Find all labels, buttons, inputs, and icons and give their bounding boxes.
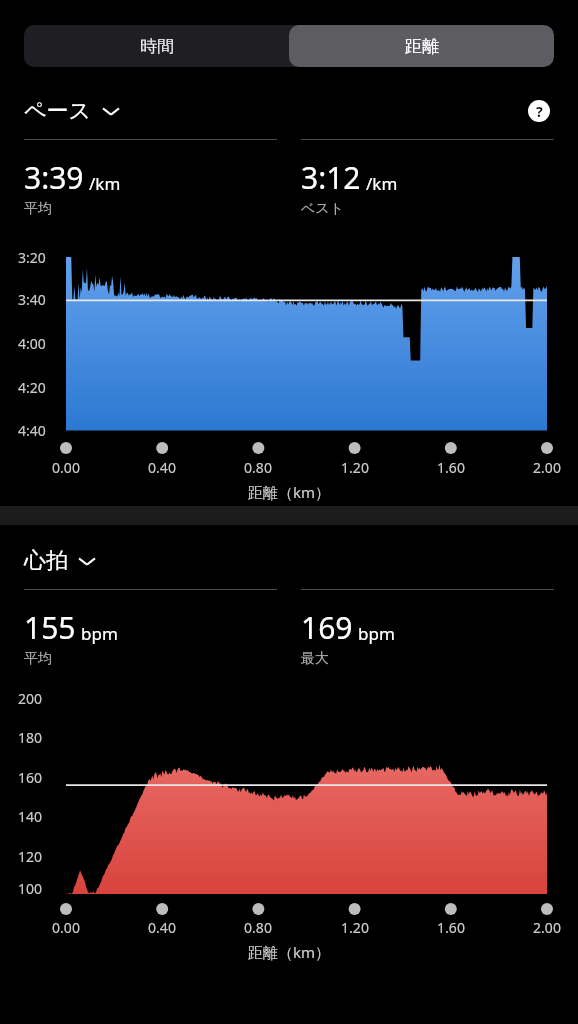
- staticText: 心拍: [24, 547, 68, 575]
- staticText: 155: [24, 607, 76, 648]
- staticText: 1.20: [331, 458, 379, 477]
- staticText: 180: [18, 728, 43, 747]
- staticText: 3:12: [301, 157, 361, 198]
- staticText: 2.00: [523, 918, 571, 937]
- staticText: 169: [301, 607, 353, 648]
- button[interactable]: 心拍: [24, 547, 102, 575]
- staticText: 3:39: [24, 157, 84, 198]
- staticText: 3:40: [18, 290, 46, 309]
- button[interactable]: ヘルプ: [524, 96, 554, 126]
- button[interactable]: 時間: [24, 25, 289, 67]
- staticText: bpm: [358, 622, 395, 645]
- staticText: 平均: [24, 650, 52, 668]
- staticText: 160: [18, 768, 43, 787]
- staticText: 100: [18, 879, 43, 898]
- staticText: 距離（km）: [0, 942, 578, 962]
- staticText: 時間: [140, 36, 174, 57]
- staticText: 距離（km）: [0, 482, 578, 502]
- staticText: bpm: [81, 622, 118, 645]
- staticText: 3:20: [18, 248, 46, 267]
- staticText: 2.00: [523, 458, 571, 477]
- staticText: 最大: [301, 650, 329, 668]
- staticText: 1.20: [331, 918, 379, 937]
- staticText: ?: [536, 102, 543, 121]
- staticText: 距離: [405, 36, 439, 57]
- staticText: 140: [18, 807, 43, 826]
- staticText: 0.80: [234, 458, 282, 477]
- staticText: 0.80: [234, 918, 282, 937]
- staticText: 1.60: [427, 918, 475, 937]
- staticText: 0.00: [42, 918, 90, 937]
- staticText: 1.60: [427, 458, 475, 477]
- staticText: 0.00: [42, 458, 90, 477]
- staticText: 200: [18, 689, 43, 708]
- staticText: ベスト: [301, 200, 344, 218]
- staticText: 120: [18, 847, 43, 866]
- staticText: 0.40: [138, 918, 186, 937]
- staticText: 4:00: [18, 334, 46, 353]
- staticText: 4:20: [18, 378, 46, 397]
- button[interactable]: ペース: [24, 97, 126, 125]
- staticText: /km: [89, 172, 121, 195]
- staticText: ペース: [24, 97, 92, 125]
- staticText: 0.40: [138, 458, 186, 477]
- staticText: 平均: [24, 200, 52, 218]
- button[interactable]: 距離: [289, 25, 554, 67]
- staticText: 4:40: [18, 421, 46, 440]
- staticText: /km: [366, 172, 398, 195]
